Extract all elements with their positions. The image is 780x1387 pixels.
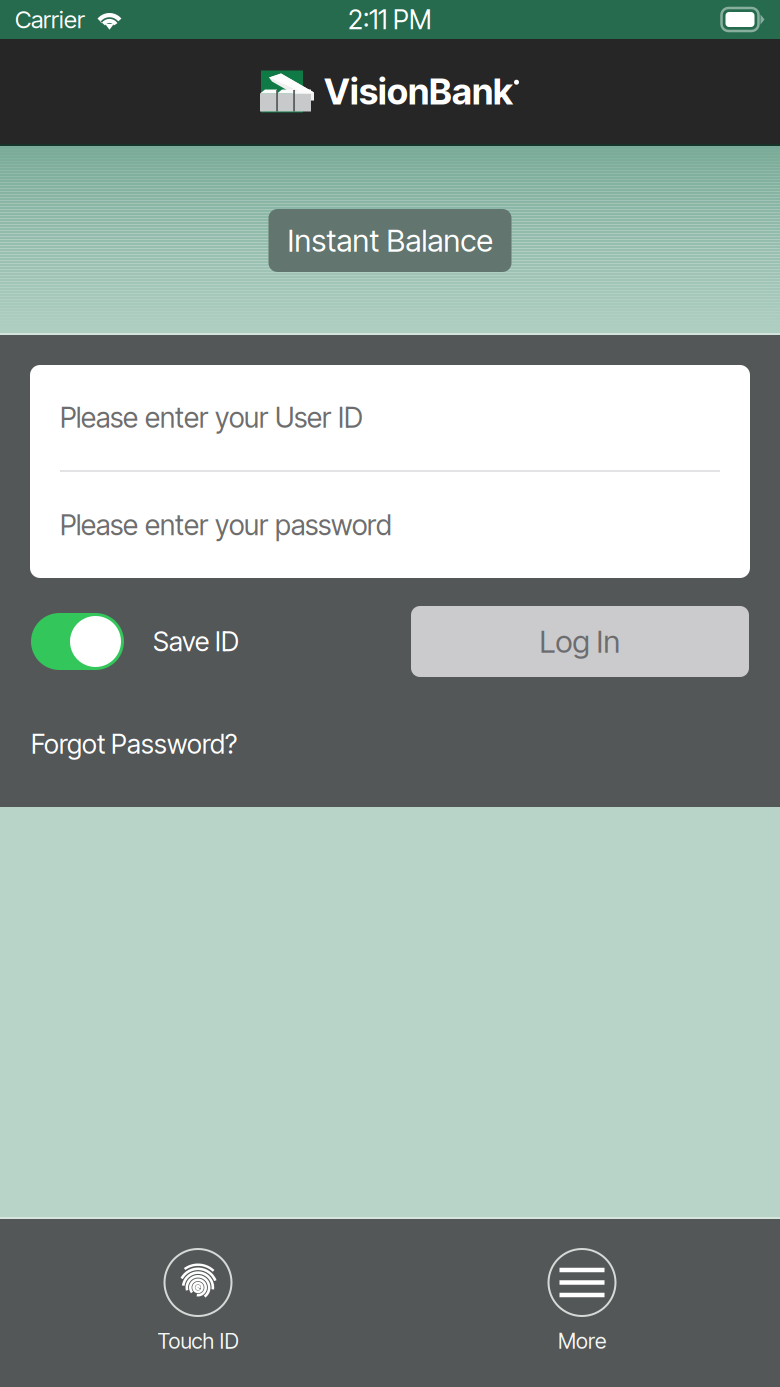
- button[interactable]: Please enter your password: [30, 472, 750, 578]
- staticText: Save ID: [153, 625, 239, 658]
- button[interactable]: Forgot Password?: [31, 724, 237, 764]
- button[interactable]: Please enter your User ID: [30, 365, 750, 470]
- button[interactable]: More: [396, 1219, 768, 1387]
- staticText: Touch ID: [157, 1328, 238, 1354]
- staticText: Log In: [539, 623, 620, 660]
- button[interactable]: Instant Balance: [268, 209, 511, 272]
- button[interactable]: Log In: [411, 606, 749, 677]
- staticText: Instant Balance: [287, 222, 492, 259]
- button[interactable]: Save ID: [31, 606, 239, 677]
- staticText: Please enter your User ID: [60, 401, 363, 434]
- button[interactable]: Touch ID: [0, 1219, 396, 1387]
- staticText: VisionBank: [324, 70, 513, 113]
- staticText: Forgot Password?: [31, 728, 237, 760]
- staticText: Please enter your password: [60, 508, 392, 542]
- staticText: 2:11 PM: [348, 3, 432, 36]
- staticText: Carrier: [15, 5, 85, 34]
- staticText: More: [558, 1328, 606, 1354]
